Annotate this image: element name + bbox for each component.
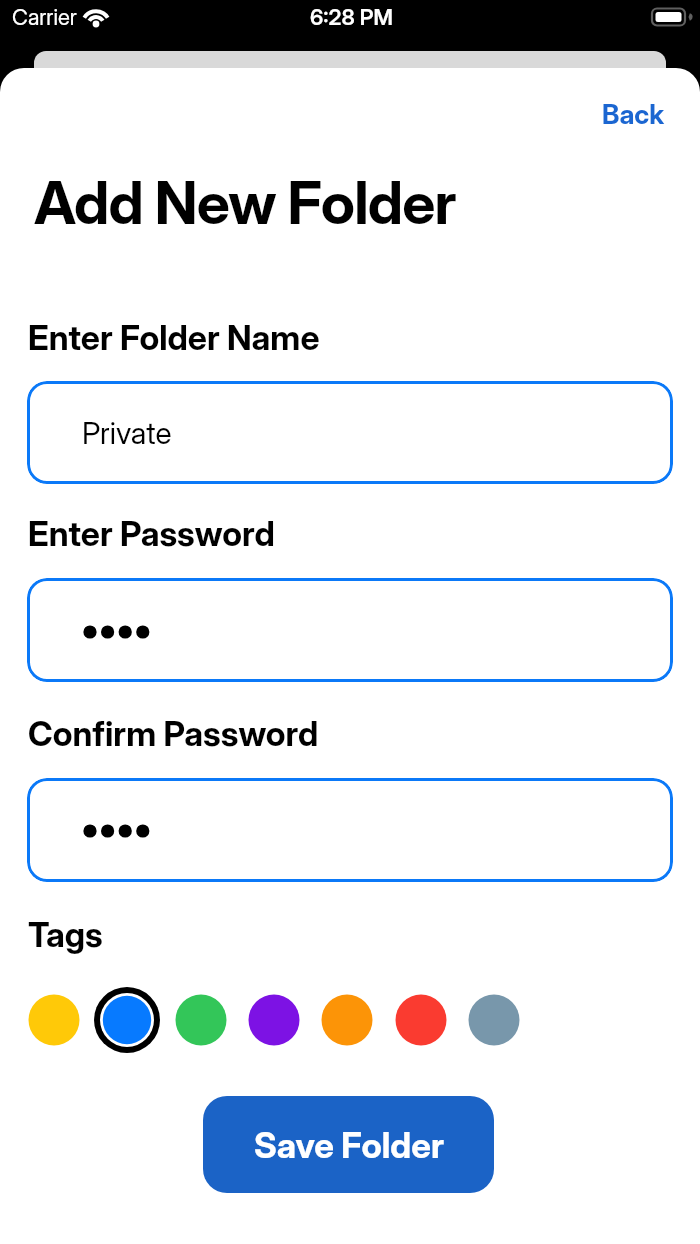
button[interactable] (388, 987, 454, 1053)
button[interactable] (27, 778, 673, 882)
staticText: 6:28 PM (310, 4, 393, 31)
button[interactable] (27, 381, 673, 484)
button[interactable]: Save Folder (203, 1096, 494, 1193)
staticText: Tags (28, 914, 103, 955)
staticText: Private (82, 415, 172, 451)
button[interactable] (461, 987, 527, 1053)
staticText: Carrier (12, 4, 77, 31)
button[interactable] (168, 987, 234, 1053)
button[interactable] (314, 987, 380, 1053)
staticText: Confirm Password (28, 713, 319, 754)
staticText: Enter Folder Name (28, 317, 320, 358)
button[interactable] (21, 987, 87, 1053)
button[interactable] (27, 578, 673, 682)
staticText: Add New Folder (34, 167, 456, 238)
button[interactable] (94, 987, 160, 1053)
button[interactable]: Back (515, 98, 665, 132)
button[interactable] (241, 987, 307, 1053)
staticText: Save Folder (254, 1124, 444, 1166)
staticText: Back (602, 98, 665, 131)
staticText: Enter Password (28, 513, 275, 554)
